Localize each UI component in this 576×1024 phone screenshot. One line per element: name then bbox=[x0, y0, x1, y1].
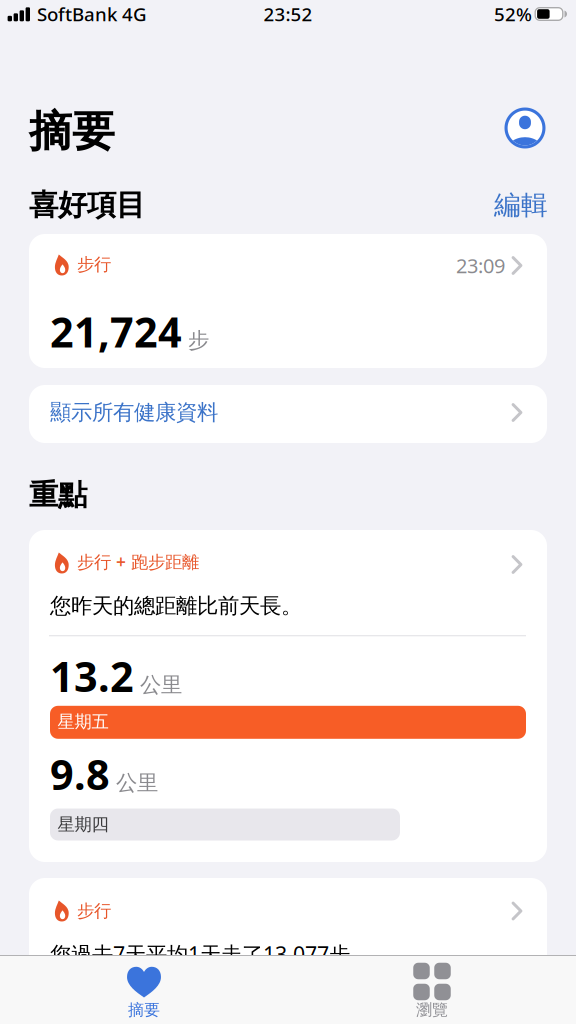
button[interactable]: 摘要 bbox=[0, 956, 288, 1024]
staticText: 步行 + 跑步距離 bbox=[77, 550, 199, 573]
staticText: 公里 bbox=[116, 770, 158, 796]
button[interactable]: 瀏覽 bbox=[288, 956, 576, 1024]
staticText: 52% bbox=[494, 2, 532, 26]
staticText: 星期五 bbox=[57, 711, 108, 732]
staticText: 步 bbox=[188, 327, 209, 353]
staticText: 重點 bbox=[29, 477, 87, 513]
staticText: 23:09 bbox=[456, 252, 505, 279]
staticText: 13.2 bbox=[50, 649, 134, 703]
staticText: 星期四 bbox=[57, 814, 108, 835]
button[interactable]: 步行 bbox=[29, 234, 547, 368]
staticText: 21,724 bbox=[50, 304, 182, 359]
button[interactable]: 顯示所有健康資料 bbox=[29, 385, 547, 443]
staticText: 編輯 bbox=[494, 189, 548, 221]
staticText: 摘要 bbox=[29, 105, 115, 158]
staticText: 顯示所有健康資料 bbox=[50, 399, 218, 426]
button[interactable]: 編輯 bbox=[494, 189, 548, 221]
staticText: 公里 bbox=[140, 672, 182, 698]
staticText: 9.8 bbox=[50, 747, 110, 801]
staticText: 喜好項目 bbox=[29, 187, 145, 223]
staticText: 步行 bbox=[77, 900, 111, 922]
staticText: 瀏覽 bbox=[416, 1000, 448, 1020]
button[interactable]: 個人檔案 bbox=[504, 107, 545, 148]
staticText: 摘要 bbox=[128, 1000, 160, 1020]
staticText: 您昨天的總距離比前天長。 bbox=[50, 593, 302, 619]
button[interactable]: 步行 + 跑步距離 bbox=[29, 530, 547, 862]
staticText: 步行 bbox=[77, 254, 111, 275]
staticText: SoftBank 4G bbox=[37, 2, 147, 26]
button[interactable]: 步行 bbox=[29, 878, 547, 1024]
staticText: 您過去7天平均1天走了13,077步。 bbox=[50, 940, 371, 968]
staticText: 23:52 bbox=[263, 2, 312, 26]
